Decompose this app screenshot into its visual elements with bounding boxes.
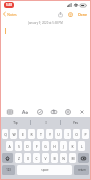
button[interactable]: M xyxy=(69,153,76,163)
button[interactable]: Delete xyxy=(78,153,89,163)
button[interactable]: G xyxy=(42,141,49,151)
staticText: V xyxy=(44,156,47,161)
button[interactable]: W xyxy=(10,129,17,139)
staticText: I xyxy=(67,132,69,137)
staticText: T xyxy=(40,132,42,137)
button[interactable]: Q xyxy=(2,129,8,139)
button[interactable]: I xyxy=(64,129,71,139)
button[interactable]: E xyxy=(19,129,26,139)
button[interactable]: I xyxy=(31,117,60,128)
staticText: B xyxy=(53,156,56,161)
button[interactable]: return xyxy=(74,165,89,175)
staticText: Z xyxy=(18,156,20,161)
button[interactable]: R xyxy=(28,129,35,139)
staticText: I xyxy=(45,121,47,125)
staticText: Y xyxy=(49,132,51,137)
button[interactable]: T xyxy=(37,129,44,139)
staticText: N xyxy=(62,156,65,161)
button[interactable]: Done xyxy=(75,9,90,19)
staticText: Notes xyxy=(7,12,17,17)
button[interactable]: Tip xyxy=(1,117,30,128)
button[interactable]: K xyxy=(69,141,76,151)
button[interactable]: J xyxy=(60,141,67,151)
staticText: G xyxy=(44,144,47,149)
button[interactable]: V xyxy=(42,153,49,163)
staticText: return xyxy=(78,168,86,172)
staticText: O xyxy=(75,132,78,137)
button[interactable]: X xyxy=(24,153,31,163)
button[interactable]: Table xyxy=(4,106,15,117)
staticText: C xyxy=(35,156,38,161)
staticText: K xyxy=(71,144,74,149)
button[interactable]: U xyxy=(55,129,62,139)
staticText: E xyxy=(22,132,24,137)
staticText: L xyxy=(81,144,83,149)
staticText: A xyxy=(8,144,11,149)
button[interactable]: Z xyxy=(15,153,22,163)
staticText: F xyxy=(36,144,38,149)
button[interactable]: space xyxy=(17,165,72,175)
button[interactable]: A xyxy=(6,141,13,151)
staticText: S xyxy=(18,144,20,149)
staticText: R xyxy=(30,132,33,137)
staticText: M xyxy=(71,156,75,161)
button[interactable]: D xyxy=(24,141,31,151)
button[interactable]: P xyxy=(82,129,89,139)
staticText: D xyxy=(26,144,29,149)
button[interactable]: New note xyxy=(65,9,75,19)
button[interactable]: C xyxy=(33,153,40,163)
button[interactable]: H xyxy=(51,141,58,151)
button[interactable]: O xyxy=(73,129,80,139)
staticText: 123 xyxy=(6,168,11,172)
button[interactable]: Text format xyxy=(19,106,30,117)
button[interactable]: B xyxy=(51,153,58,163)
button[interactable]: S xyxy=(15,141,22,151)
button[interactable]: Hide keyboard xyxy=(76,106,87,117)
staticText: Q xyxy=(4,132,7,137)
button[interactable]: Y xyxy=(46,129,53,139)
button[interactable]: Yes xyxy=(61,117,90,128)
staticText: W xyxy=(12,132,16,137)
staticText: space xyxy=(41,168,49,172)
staticText: Done xyxy=(78,12,87,17)
staticText: X xyxy=(27,156,29,161)
staticText: 5:38 xyxy=(6,3,12,7)
button[interactable]: 123 xyxy=(2,165,15,175)
button[interactable]: Share xyxy=(55,9,65,19)
button[interactable]: N xyxy=(60,153,67,163)
button[interactable]: Camera xyxy=(48,106,59,117)
button[interactable]: F xyxy=(33,141,40,151)
staticText: U xyxy=(57,132,60,137)
staticText: January 9, 2020 at 5:38 PM xyxy=(28,21,63,25)
button[interactable]: L xyxy=(78,141,85,151)
button[interactable]: Shift xyxy=(2,153,13,163)
button[interactable]: Checklist xyxy=(34,106,45,117)
staticText: J xyxy=(63,144,64,149)
staticText: H xyxy=(53,144,56,149)
button[interactable]: Notes xyxy=(1,9,19,19)
staticText: P xyxy=(84,132,87,137)
button[interactable]: Markup xyxy=(62,106,73,117)
staticText: Yes xyxy=(73,121,78,125)
staticText: Tip xyxy=(13,121,18,125)
